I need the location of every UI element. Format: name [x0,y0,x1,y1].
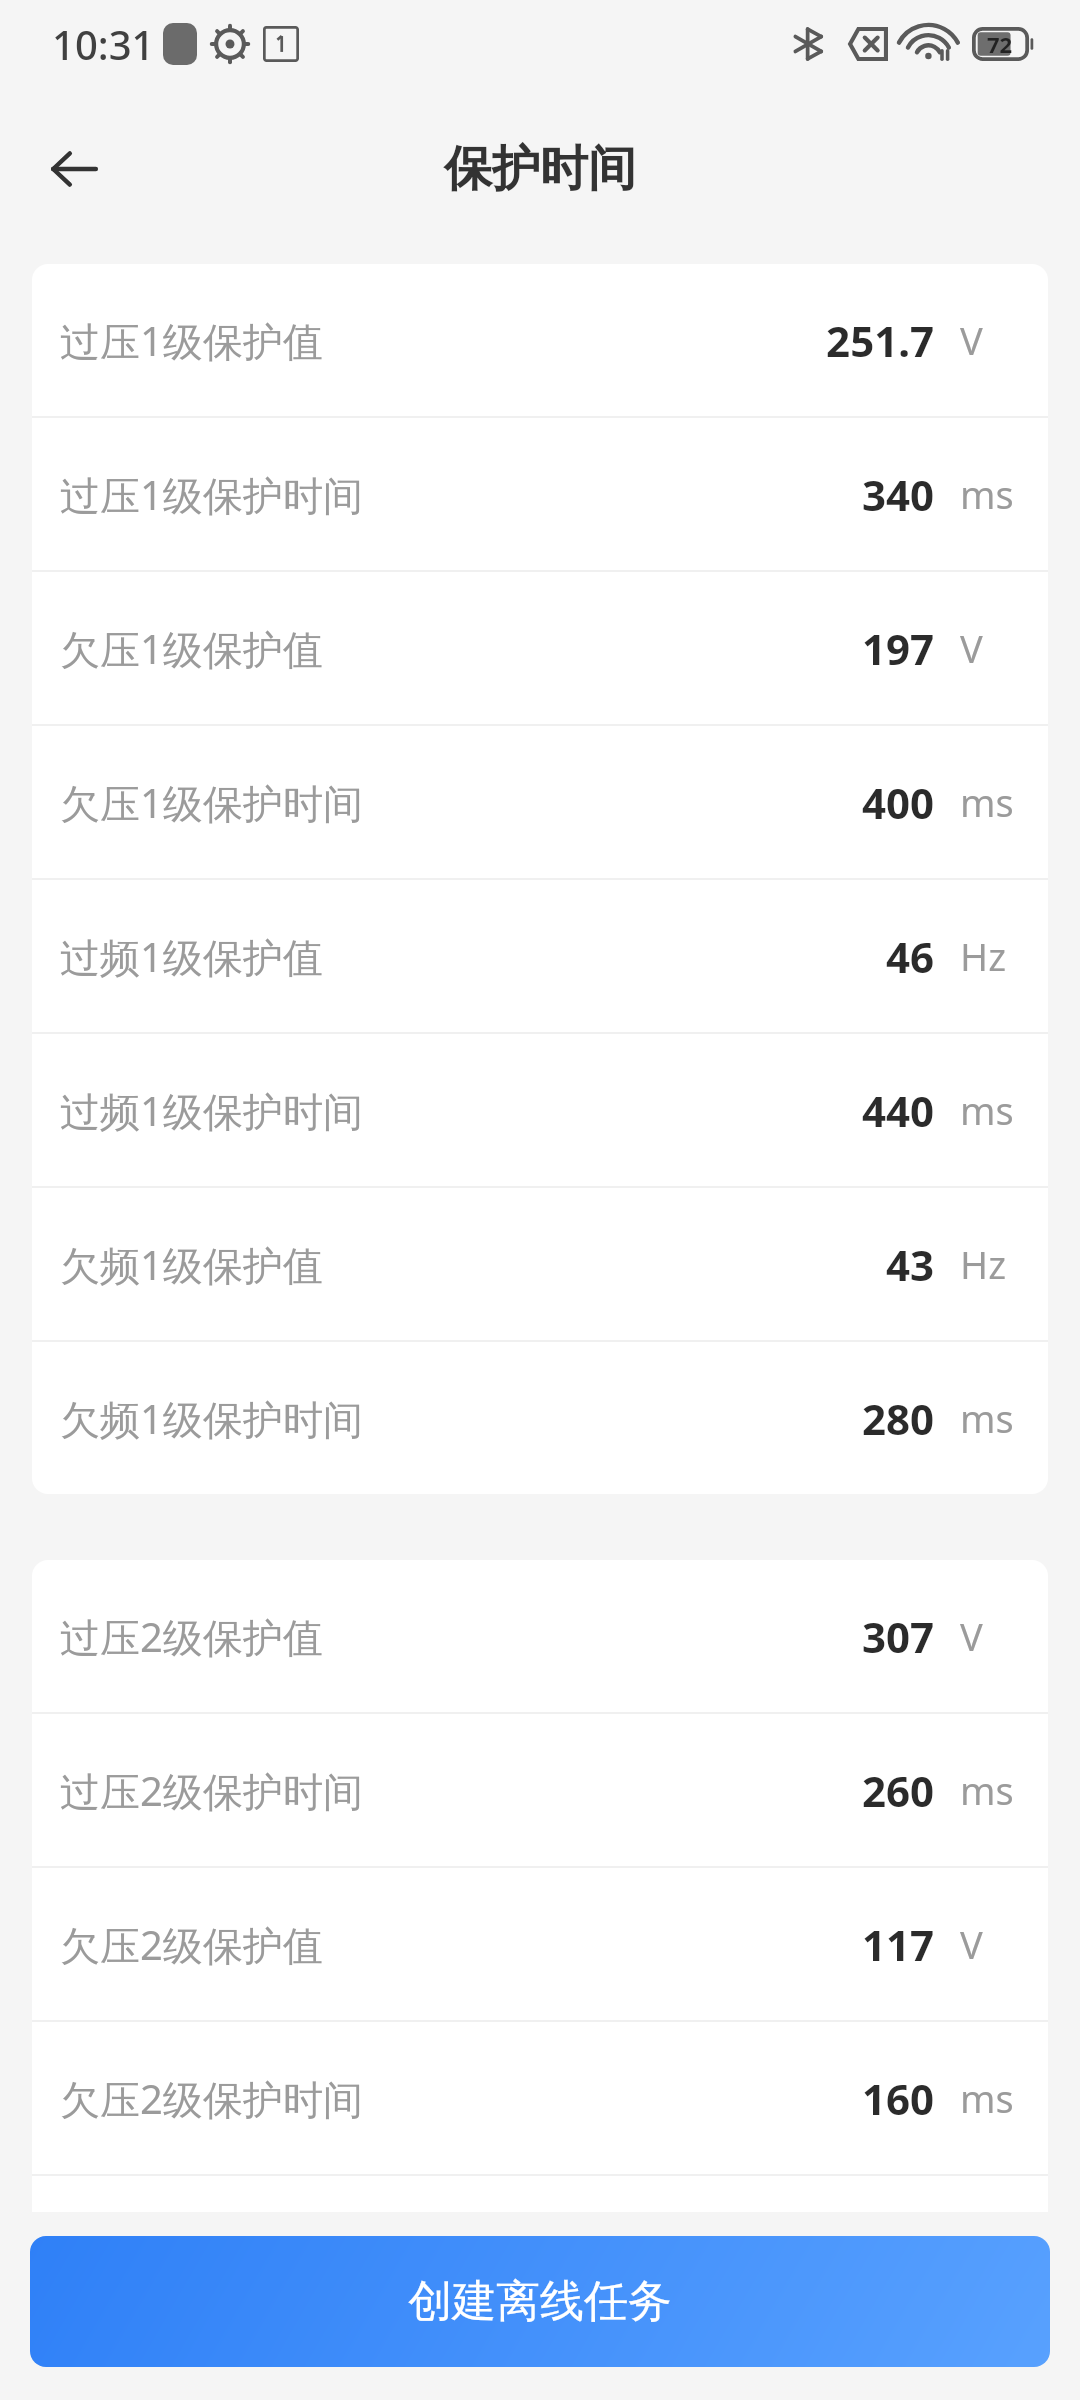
staticText: 欠压1级保护时间 [60,775,363,830]
staticText: ms [960,776,1014,828]
staticText: Hz [960,1238,1007,1290]
button[interactable]: 欠压1级保护时间 [32,726,1048,878]
staticText: 欠压1级保护值 [60,621,323,676]
staticText: 400 [861,774,934,831]
staticText: 欠频1级保护值 [60,1237,323,1292]
staticText: 280 [861,1390,934,1447]
staticText: 过压1级保护值 [60,313,323,368]
staticText: 欠频1级保护时间 [60,1391,363,1446]
button[interactable]: 创建离线任务 [30,2236,1050,2367]
button[interactable]: 过频1级保护值 [32,880,1048,1032]
staticText: 过压2级保护值 [60,1609,323,1664]
staticText: 72 [987,29,1013,59]
staticText: V [960,1918,983,1970]
button[interactable]: 欠压2级保护时间 [32,2022,1048,2174]
staticText: 过频1级保护时间 [60,1083,363,1138]
staticText: V [960,622,983,674]
staticText: 保护时间 [444,139,636,199]
staticText: 欠压2级保护时间 [60,2071,363,2126]
staticText: Hz [960,930,1007,982]
staticText: 197 [861,620,934,677]
staticText: ms [960,2072,1014,2124]
staticText: V [960,1610,983,1662]
button[interactable]: 过频1级保护时间 [32,1034,1048,1186]
button[interactable]: 欠频1级保护时间 [32,1342,1048,1494]
staticText: 43 [885,1236,934,1293]
staticText: ms [960,1392,1014,1444]
staticText: V [960,314,983,366]
staticText: 欠压2级保护值 [60,1917,323,1972]
staticText: ms [960,1084,1014,1136]
staticText: 440 [861,1082,934,1139]
staticText: 260 [861,1762,934,1819]
staticText: 251.7 [826,312,934,369]
staticText: 过压2级保护时间 [60,1763,363,1818]
button[interactable]: 欠压1级保护值 [32,572,1048,724]
button[interactable]: 过压2级保护时间 [32,1714,1048,1866]
staticText: 117 [861,1916,934,1973]
staticText: ms [960,1764,1014,1816]
staticText: 10:31 [52,17,155,71]
staticText: 创建离线任务 [408,2274,672,2329]
staticText: ms [960,468,1014,520]
staticText: 过频1级保护值 [60,929,323,984]
staticText: 46 [885,928,934,985]
staticText: 160 [861,2070,934,2127]
staticText: 340 [861,466,934,523]
button[interactable]: 过压2级保护值 [32,1560,1048,1712]
button[interactable]: 过压1级保护时间 [32,418,1048,570]
staticText: 过压1级保护时间 [60,467,363,522]
staticText: 307 [861,1608,934,1665]
button[interactable]: 欠频1级保护值 [32,1188,1048,1340]
button[interactable]: Back [26,121,122,217]
button[interactable]: 欠压2级保护值 [32,1868,1048,2020]
button[interactable]: 过压1级保护值 [32,264,1048,416]
